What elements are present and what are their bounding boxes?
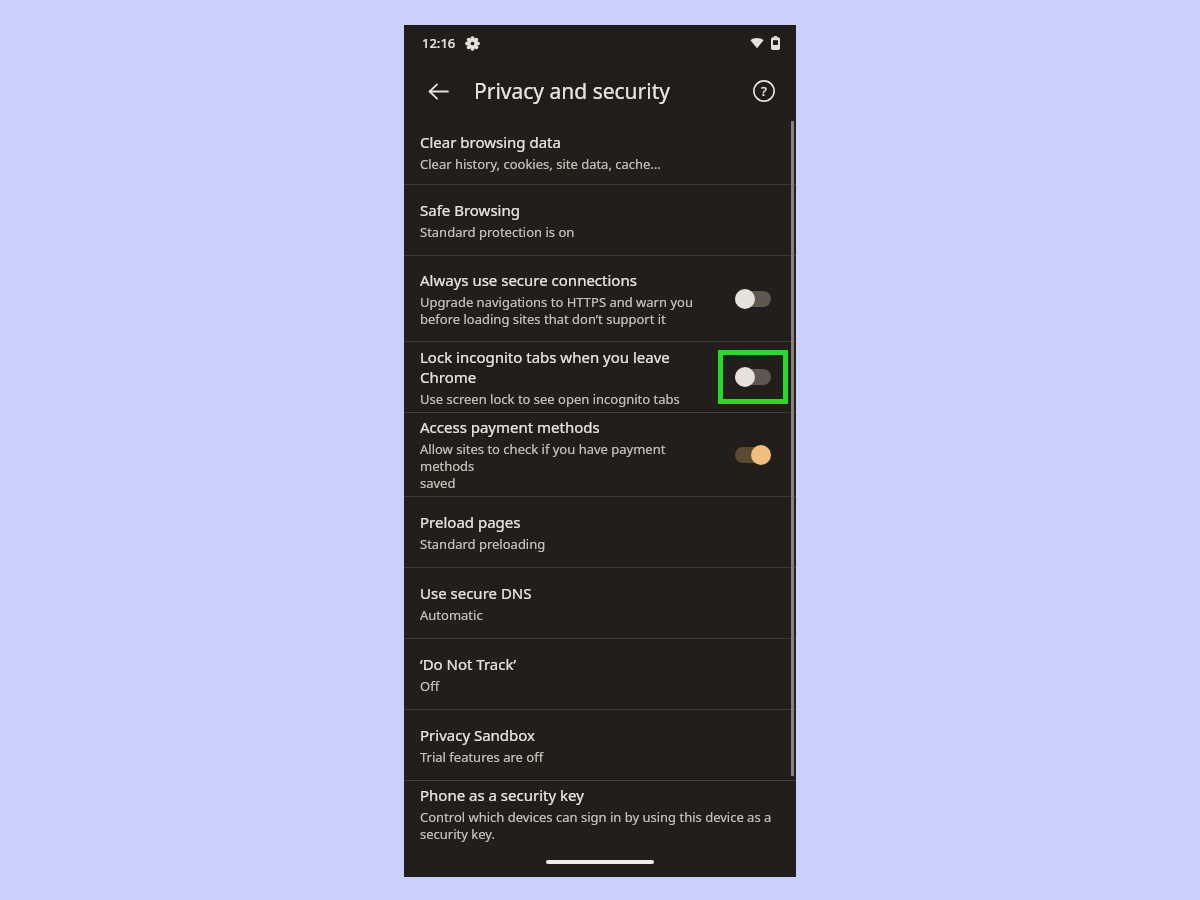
- staticText: Use screen lock to see open incognito ta…: [420, 390, 680, 408]
- staticText: 12:16: [422, 34, 456, 52]
- button[interactable]: Use secure DNS: [404, 568, 796, 638]
- button[interactable]: Help: [742, 69, 786, 113]
- staticText: ?: [761, 82, 767, 100]
- button[interactable]: Always use secure connections: [718, 272, 788, 326]
- button[interactable]: Privacy Sandbox: [404, 710, 796, 780]
- staticText: Privacy Sandbox: [420, 725, 536, 745]
- staticText: Privacy and security: [474, 77, 670, 106]
- staticText: Lock incognito tabs when you leave Chrom…: [420, 347, 712, 387]
- button[interactable]: Lock incognito tabs when you leave Chrom…: [404, 342, 796, 412]
- staticText: Access payment methods: [420, 417, 600, 437]
- staticText: ‘Do Not Track’: [420, 654, 517, 674]
- staticText: Preload pages: [420, 512, 521, 532]
- button[interactable]: Phone as a security key: [404, 781, 796, 847]
- button[interactable]: Preload pages: [404, 497, 796, 567]
- staticText: Trial features are off: [420, 748, 544, 766]
- button[interactable]: Access payment methods: [404, 413, 796, 496]
- staticText: Use secure DNS: [420, 583, 532, 603]
- staticText: Always use secure connections: [420, 270, 637, 290]
- staticText: Upgrade navigations to HTTPS and warn yo…: [420, 293, 693, 328]
- staticText: Off: [420, 677, 440, 695]
- button[interactable]: Always use secure connections: [404, 256, 796, 341]
- button[interactable]: Access payment methods: [718, 428, 788, 482]
- button[interactable]: Clear browsing data: [404, 121, 796, 184]
- staticText: Phone as a security key: [420, 785, 584, 805]
- staticText: Standard protection is on: [420, 223, 575, 241]
- staticText: Automatic: [420, 606, 483, 624]
- staticText: Clear history, cookies, site data, cache…: [420, 155, 661, 173]
- staticText: Control which devices can sign in by usi…: [420, 808, 772, 843]
- staticText: Allow sites to check if you have payment…: [420, 440, 712, 492]
- button[interactable]: Back: [416, 69, 460, 113]
- button[interactable]: Safe Browsing: [404, 185, 796, 255]
- staticText: Clear browsing data: [420, 132, 561, 152]
- staticText: Safe Browsing: [420, 200, 520, 220]
- button[interactable]: ‘Do Not Track’: [404, 639, 796, 709]
- button[interactable]: Lock incognito tabs when you leave Chrom…: [723, 355, 783, 399]
- staticText: Standard preloading: [420, 535, 546, 553]
